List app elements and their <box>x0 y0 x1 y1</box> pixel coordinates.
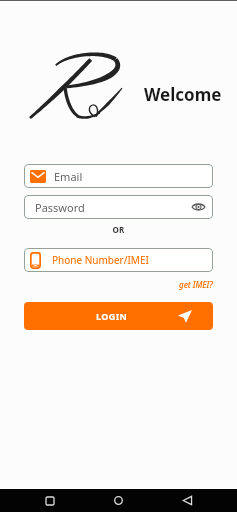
staticText: LOGIN <box>96 310 128 322</box>
staticText: OR <box>0 224 237 235</box>
button[interactable]: Home <box>103 489 133 512</box>
button[interactable]: Phone Number/IMEI <box>24 248 213 272</box>
button[interactable]: LOGIN <box>24 302 213 330</box>
staticText: Email <box>54 169 83 184</box>
button[interactable]: Show password <box>186 195 210 219</box>
staticText: Welcome <box>144 83 222 106</box>
button[interactable]: Password <box>24 195 213 219</box>
staticText: Phone Number/IMEI <box>52 253 149 267</box>
button[interactable]: Back <box>172 489 202 512</box>
button[interactable]: get IMEI? <box>179 279 213 290</box>
button[interactable]: Recent apps <box>35 489 65 512</box>
button[interactable]: Email <box>24 164 213 188</box>
staticText: Password <box>35 200 85 215</box>
